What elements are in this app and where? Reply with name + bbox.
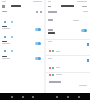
button[interactable]: Toggle <box>81 29 87 32</box>
button[interactable] <box>46 55 90 71</box>
button[interactable] <box>0 48 44 62</box>
button[interactable]: Toggle <box>35 57 41 60</box>
button[interactable]: Back <box>48 5 51 8</box>
button[interactable] <box>46 39 90 55</box>
button[interactable] <box>0 19 44 33</box>
button[interactable]: Toggle <box>35 28 41 31</box>
button[interactable]: Toggle <box>35 42 41 45</box>
button[interactable] <box>0 34 44 48</box>
button[interactable] <box>46 26 90 33</box>
button[interactable] <box>46 72 90 92</box>
